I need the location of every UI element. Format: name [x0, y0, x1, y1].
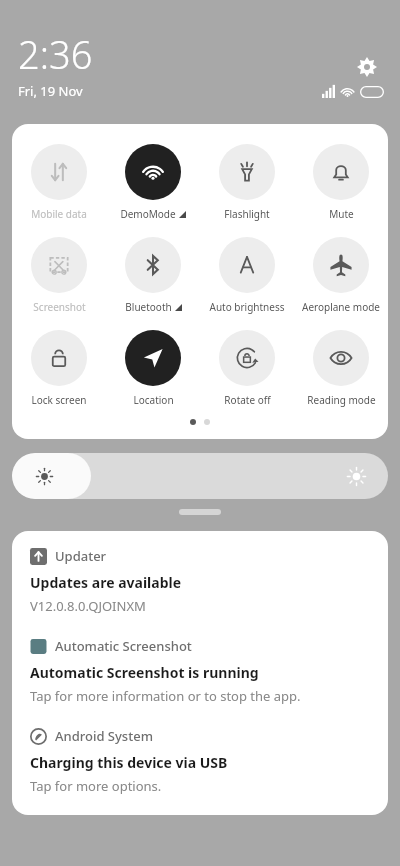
staticText: Rotate off: [224, 393, 271, 407]
staticText: Automatic Screenshot is running: [30, 663, 259, 682]
staticText: Tap for more options.: [30, 777, 162, 795]
button[interactable]: Automatic Screenshot: [12, 635, 388, 707]
button[interactable]: Screenshot: [12, 235, 106, 316]
staticText: DemoMode: [120, 207, 176, 221]
button[interactable]: Auto brightness: [200, 235, 294, 316]
staticText: Automatic Screenshot: [55, 637, 192, 655]
staticText: V12.0.8.0.QJOINXM: [30, 597, 146, 615]
button[interactable]: Lock screen: [12, 328, 106, 409]
button[interactable]: Mute: [294, 142, 388, 223]
button[interactable]: Updater: [12, 545, 388, 617]
staticText: Updates are available: [30, 573, 182, 592]
staticText: Aeroplane mode: [302, 300, 380, 314]
button[interactable]: Aeroplane mode: [294, 235, 388, 316]
staticText: Fri, 19 Nov: [18, 82, 83, 100]
button[interactable]: Rotate off: [200, 328, 294, 409]
staticText: Auto brightness: [209, 300, 285, 314]
staticText: 2:36: [18, 28, 93, 80]
button[interactable]: DemoMode: [106, 142, 200, 223]
staticText: Screenshot: [33, 300, 86, 314]
button[interactable]: Reading mode: [294, 328, 388, 409]
staticText: Charging this device via USB: [30, 753, 228, 772]
staticText: Mobile data: [31, 207, 87, 221]
staticText: Flashlight: [224, 207, 270, 221]
staticText: Reading mode: [307, 393, 376, 407]
button[interactable]: Flashlight: [200, 142, 294, 223]
button[interactable]: Mobile data: [12, 142, 106, 223]
staticText: Bluetooth: [125, 300, 172, 314]
staticText: Mute: [329, 207, 354, 221]
staticText: Updater: [55, 547, 107, 565]
staticText: Android System: [55, 727, 153, 745]
button[interactable]: Android System: [12, 725, 388, 797]
button[interactable]: Settings: [350, 50, 384, 84]
staticText: Tap for more information or to stop the …: [30, 687, 301, 705]
button[interactable]: Location: [106, 328, 200, 409]
button[interactable]: Brightness: [12, 453, 388, 499]
staticText: Location: [133, 393, 174, 407]
staticText: Lock screen: [31, 393, 87, 407]
button[interactable]: Bluetooth: [106, 235, 200, 316]
